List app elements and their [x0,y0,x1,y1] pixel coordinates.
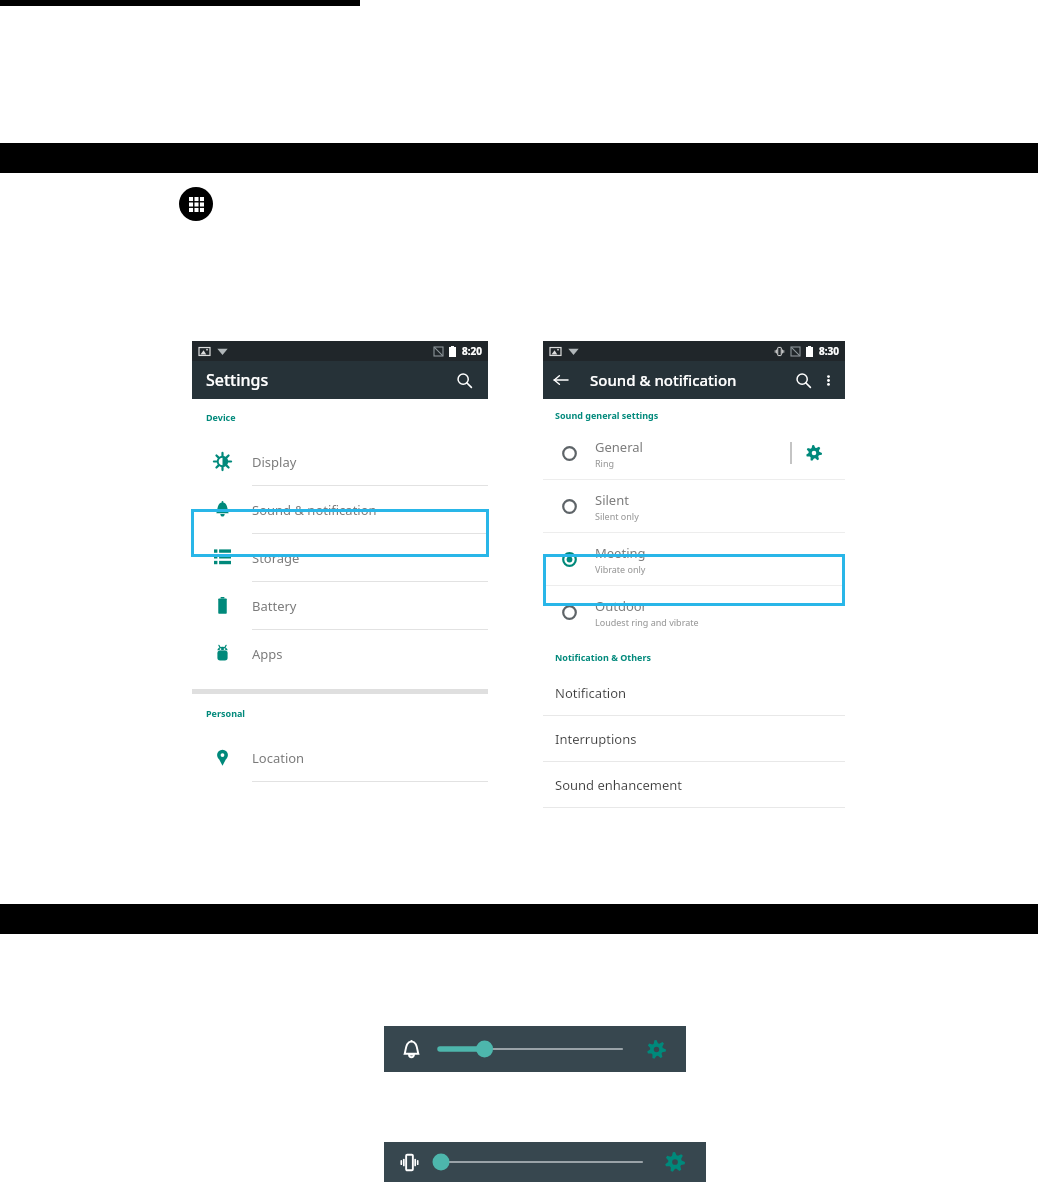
button[interactable]: Sound & notification [192,486,488,534]
button[interactable] [434,1151,642,1173]
button[interactable]: Interruptions [543,716,845,762]
button[interactable]: Notification [543,670,845,716]
staticText: Ring [595,457,615,469]
staticText: Notification [555,684,627,702]
button[interactable]: Sound settings [643,1036,669,1062]
button[interactable]: Back [548,367,574,393]
staticText: General [595,438,643,456]
button[interactable]: More options [816,368,840,392]
button[interactable]: Silent [543,480,845,533]
staticText: Vibrate only [595,563,646,575]
staticText: Device [206,411,236,423]
button[interactable]: Outdoor [543,586,845,638]
staticText: Sound & notification [590,370,737,390]
button[interactable]: Vibrate [395,1148,423,1176]
button[interactable]: Meeting [543,533,845,586]
staticText: 8:20 [462,344,482,358]
staticText: Meeting [595,544,646,562]
button[interactable]: Sound enhancement [543,762,845,808]
staticText: Sound general settings [555,409,659,421]
button[interactable] [543,554,845,606]
button[interactable]: Battery [192,582,488,630]
button[interactable] [440,1037,622,1061]
staticText: Storage [252,549,300,567]
staticText: Display [252,453,297,471]
staticText: Notification & Others [555,651,652,663]
staticText: Sound enhancement [555,776,682,794]
staticText: Silent only [595,510,639,522]
staticText: Sound & notification [252,501,377,519]
staticText: Battery [252,597,297,615]
button[interactable]: Display [192,438,488,486]
staticText: 8:30 [819,344,839,358]
staticText: Personal [206,707,246,719]
staticText: Outdoor [595,597,647,615]
button[interactable]: Search [790,367,816,393]
button[interactable]: Location [192,734,488,782]
button[interactable]: Apps [179,187,213,221]
button[interactable]: Apps [192,630,488,677]
staticText: Settings [206,369,269,391]
button[interactable]: Ringer volume [397,1035,425,1063]
staticText: Loudest ring and vibrate [595,616,699,628]
button[interactable] [191,509,489,557]
staticText: Location [252,749,305,767]
button[interactable]: General profile settings [802,441,826,465]
staticText: Silent [595,491,629,509]
button[interactable]: General [543,427,845,480]
button[interactable]: Storage [192,534,488,582]
button[interactable]: Sound settings [662,1149,688,1175]
staticText: Apps [252,645,283,663]
button[interactable]: Search [451,367,477,393]
staticText: Interruptions [555,730,637,748]
